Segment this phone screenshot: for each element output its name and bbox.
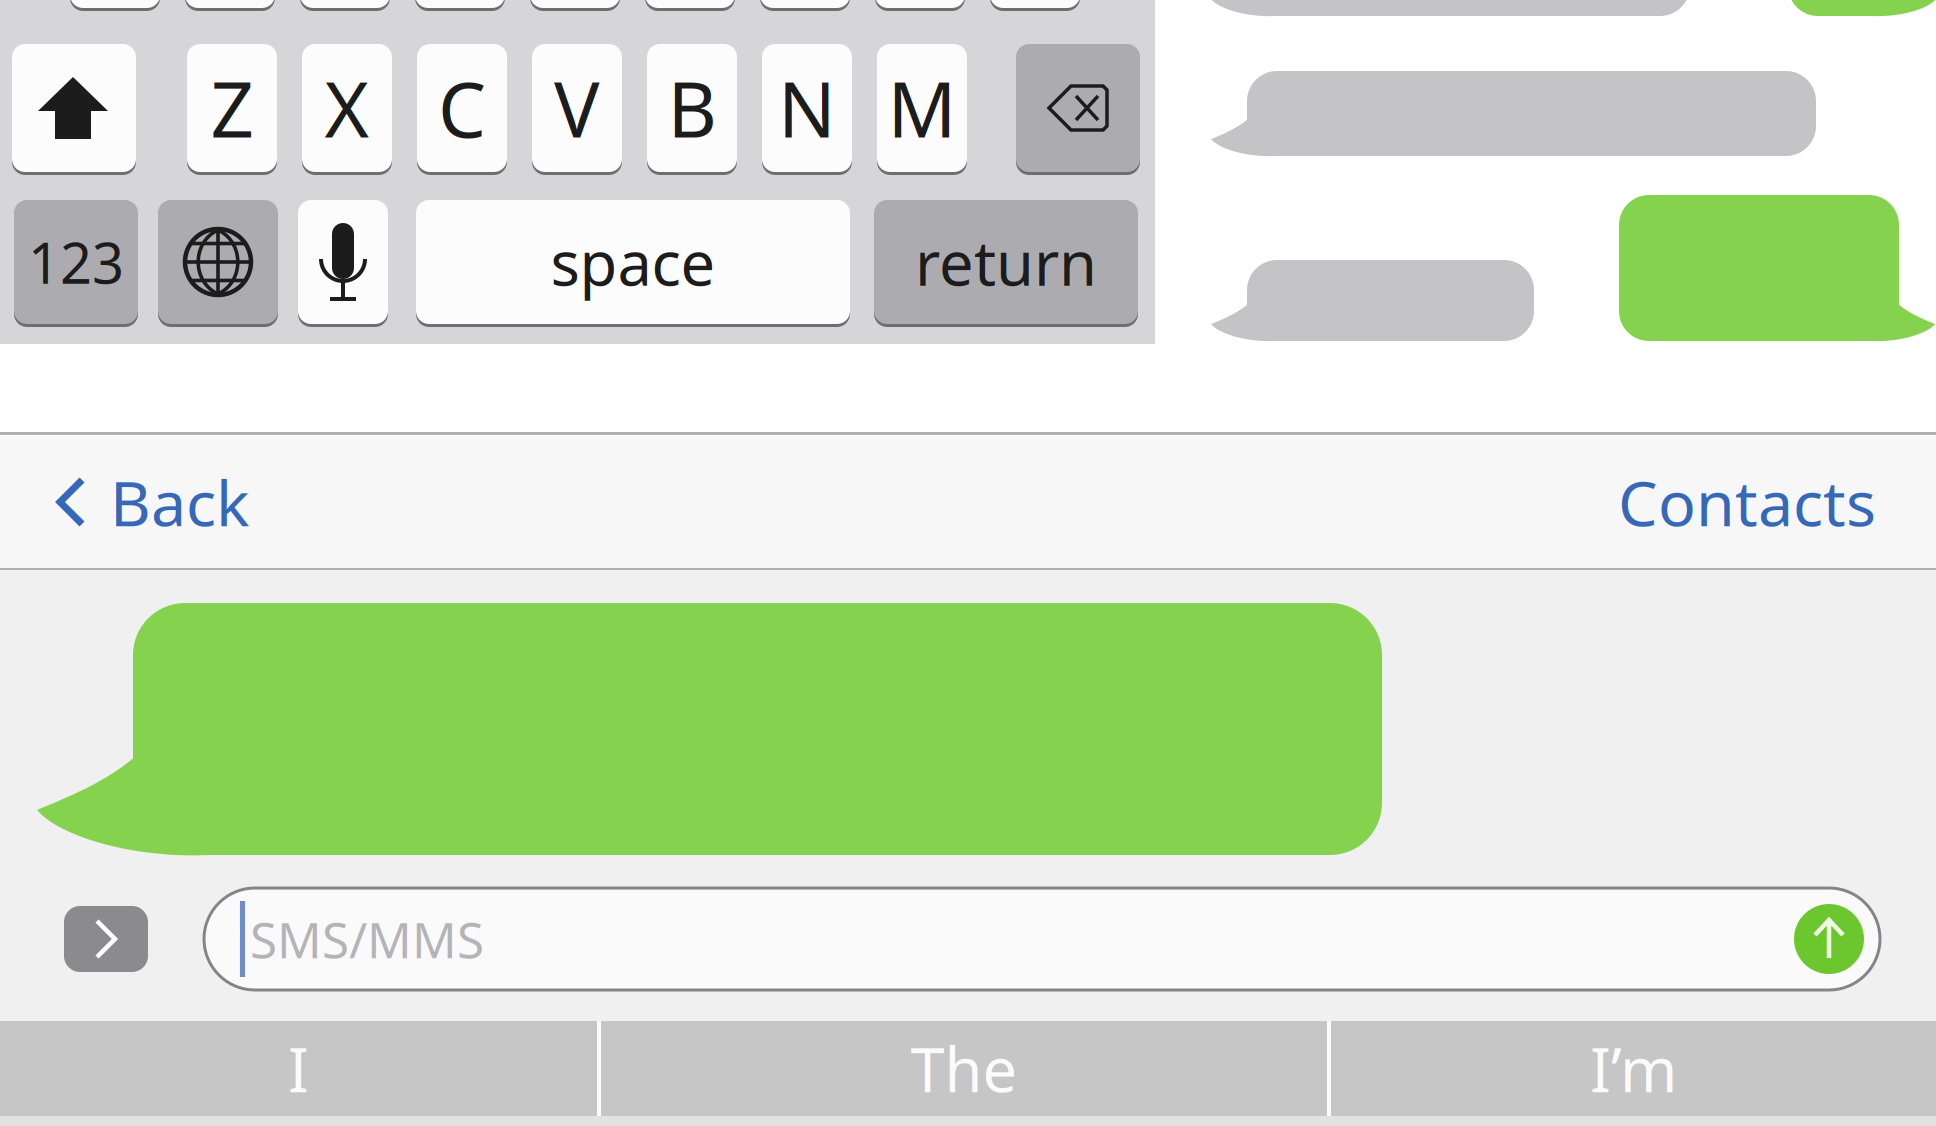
button[interactable]: I’m bbox=[1331, 1021, 1936, 1116]
staticText: V bbox=[554, 57, 600, 158]
button[interactable]: Shift bbox=[12, 44, 136, 172]
staticText: return bbox=[915, 221, 1097, 303]
staticText: I’m bbox=[1590, 1028, 1677, 1109]
staticText: I bbox=[288, 1028, 309, 1109]
button[interactable]: Delete bbox=[1016, 44, 1140, 172]
staticText: B bbox=[667, 57, 716, 158]
button[interactable]: Send bbox=[1794, 904, 1864, 974]
button[interactable]: B bbox=[647, 44, 737, 172]
button[interactable]: N bbox=[762, 44, 852, 172]
button[interactable]: 123 bbox=[14, 200, 138, 324]
button[interactable]: M bbox=[877, 44, 967, 172]
staticText: Contacts bbox=[1618, 460, 1876, 544]
button[interactable]: V bbox=[532, 44, 622, 172]
staticText: space bbox=[550, 221, 715, 303]
button[interactable]: Dictate bbox=[298, 200, 388, 324]
staticText: SMS/MMS bbox=[250, 906, 484, 972]
staticText: C bbox=[438, 57, 486, 158]
button[interactable]: I bbox=[0, 1021, 597, 1116]
staticText: N bbox=[778, 57, 836, 158]
staticText: 123 bbox=[28, 225, 124, 299]
button[interactable]: C bbox=[417, 44, 507, 172]
button[interactable]: Z bbox=[187, 44, 277, 172]
button[interactable]: The bbox=[601, 1021, 1327, 1116]
staticText: X bbox=[324, 57, 369, 158]
button[interactable]: Contacts bbox=[1604, 436, 1890, 568]
staticText: Back bbox=[110, 460, 249, 544]
button[interactable]: Back bbox=[42, 436, 263, 568]
staticText: M bbox=[887, 57, 956, 158]
button[interactable]: Next keyboard bbox=[158, 200, 278, 324]
staticText: Z bbox=[210, 57, 253, 158]
button[interactable]: X bbox=[302, 44, 392, 172]
button[interactable]: space bbox=[416, 200, 850, 324]
button[interactable]: Show more options bbox=[64, 906, 148, 972]
staticText: The bbox=[910, 1028, 1017, 1109]
button[interactable]: return bbox=[874, 200, 1138, 324]
